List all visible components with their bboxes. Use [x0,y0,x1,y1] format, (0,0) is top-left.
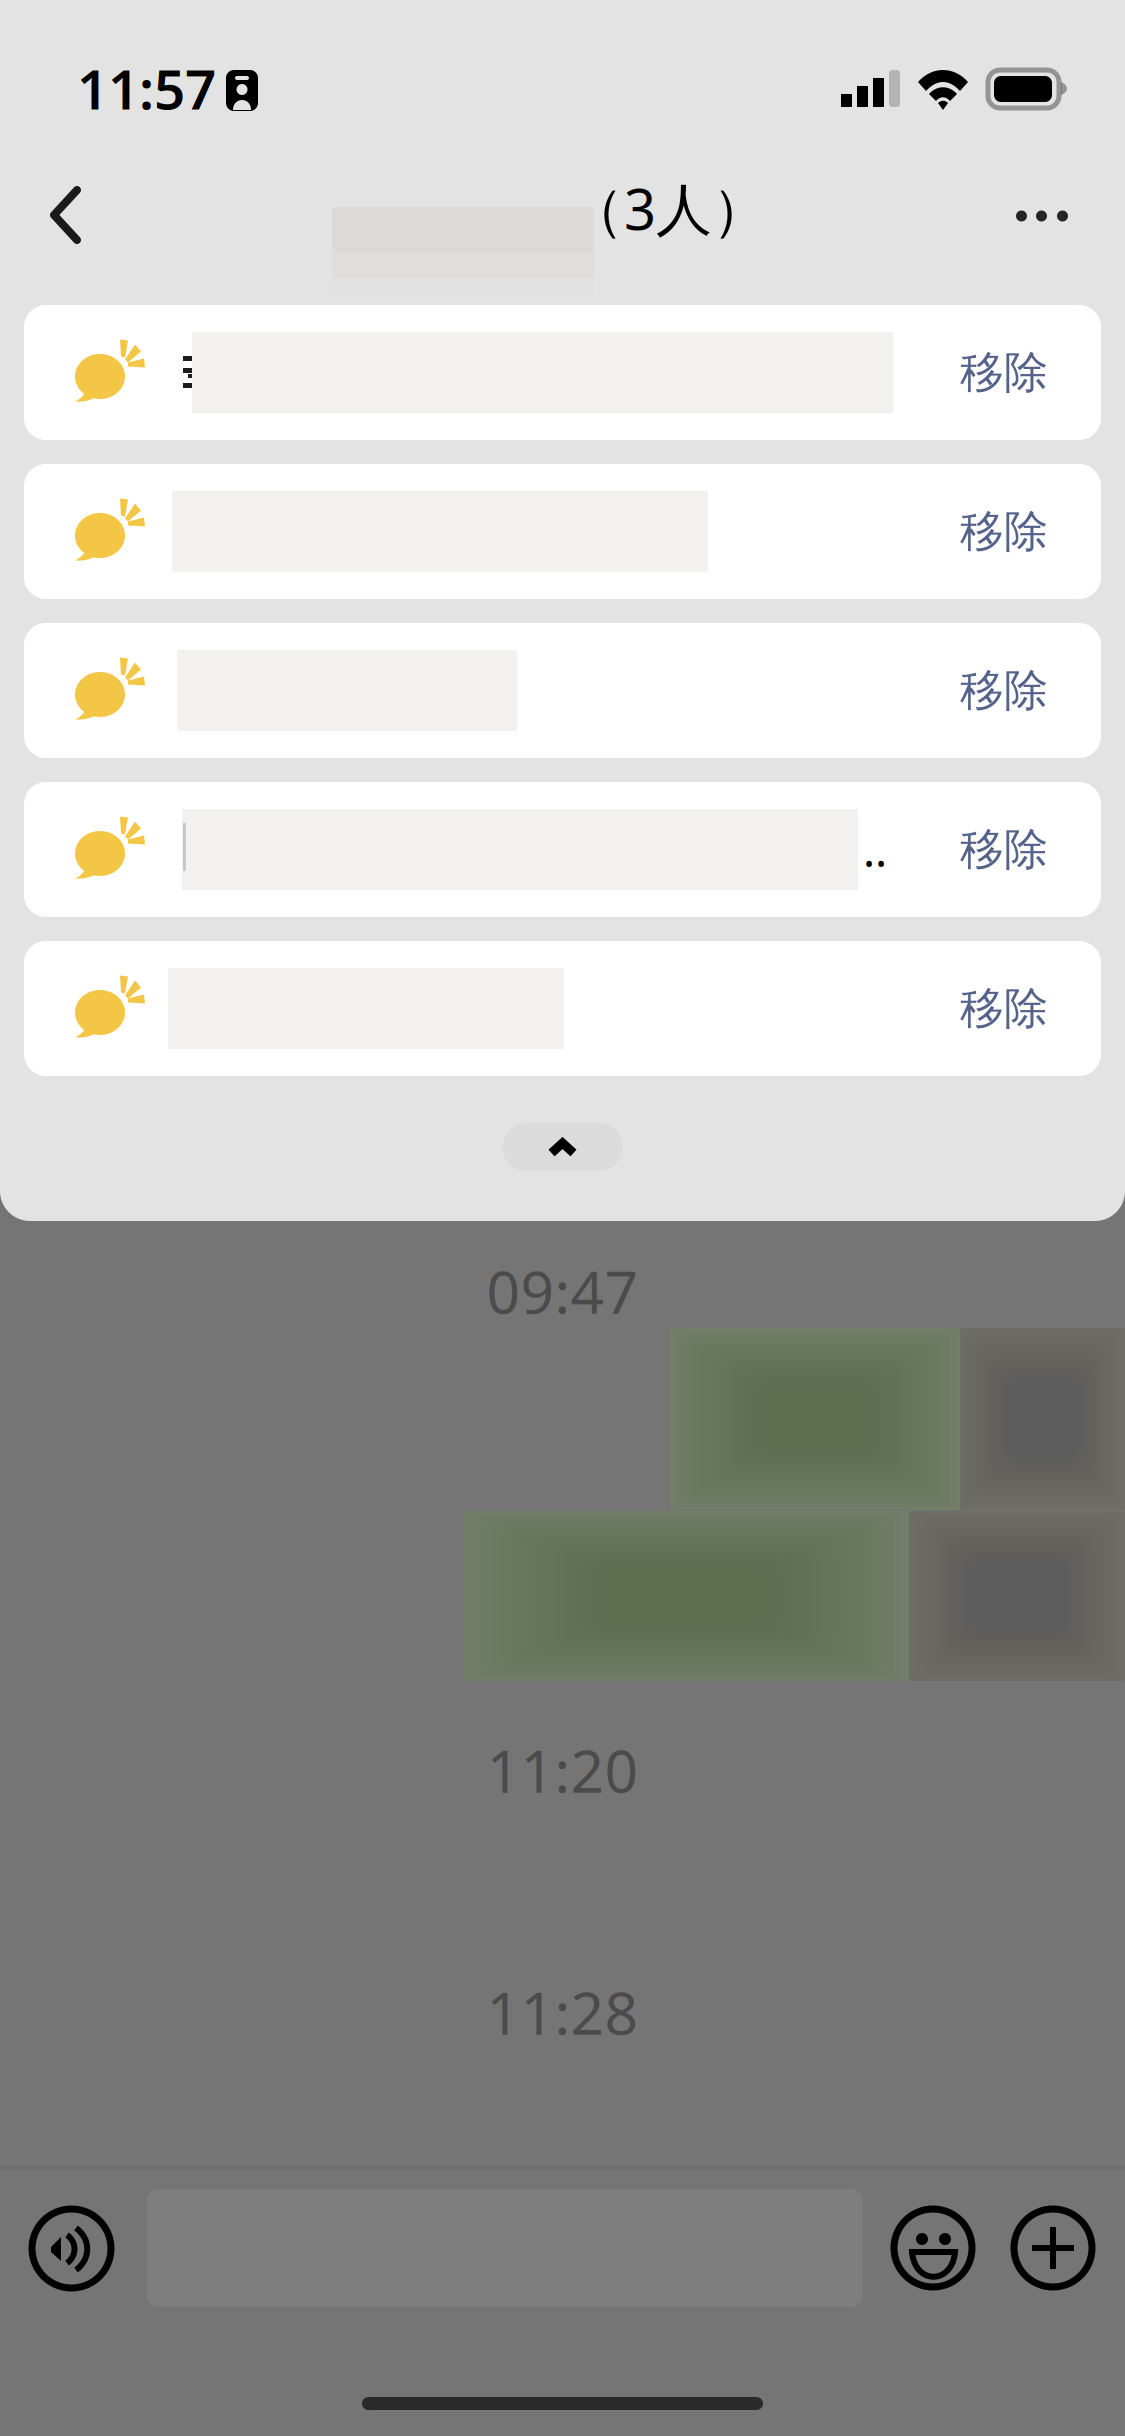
staticText: 移除 [960,822,1048,876]
button[interactable]: 移除 [24,623,1101,758]
staticText: 11:28 [486,1973,638,2051]
button[interactable]: .. [24,782,1101,917]
staticText: 11:20 [486,1731,638,1809]
staticText: 移除 [960,345,1048,399]
button[interactable]: 移除 [24,941,1101,1076]
button[interactable]: Collapse [502,1123,622,1171]
button[interactable]: Back [14,160,118,270]
staticText: 移除 [960,663,1048,717]
button[interactable]: Voice message [32,2209,111,2288]
button[interactable]: 移除 [24,464,1101,599]
staticText: （3人） [568,171,768,245]
button[interactable]: Stickers [894,2209,972,2287]
staticText: 移除 [960,981,1048,1035]
staticText: 移除 [960,504,1048,558]
button[interactable]: 移除 [24,305,1101,440]
staticText: 11:57 [77,52,216,125]
button[interactable]: More options [987,161,1097,271]
button[interactable]: More [1014,2209,1092,2287]
staticText: .. [863,819,887,880]
staticText: 09:47 [486,1252,638,1330]
